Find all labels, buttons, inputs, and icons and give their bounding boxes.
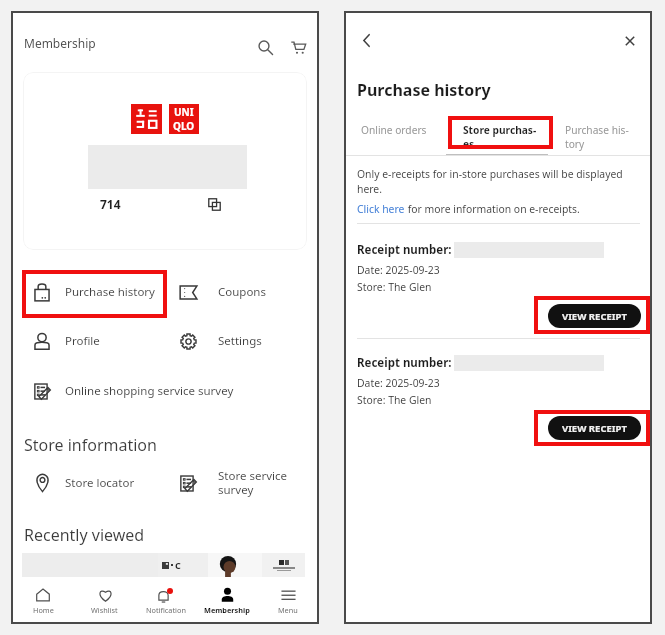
staticText: Store locator <box>65 475 135 491</box>
staticText: Home <box>33 605 54 615</box>
button[interactable]: Click here <box>357 202 405 216</box>
staticText: Coupons <box>218 284 266 300</box>
staticText: Membership <box>204 605 250 615</box>
button[interactable]: Close <box>617 28 643 54</box>
button[interactable]: Store service survey <box>176 466 316 500</box>
button[interactable]: Purchase his- tory <box>548 117 650 156</box>
staticText: VIEW RECEIPT <box>562 422 627 435</box>
button[interactable]: VIEW RECEIPT <box>548 416 641 440</box>
staticText: Store information <box>24 434 157 456</box>
button[interactable]: Recently viewed item 4 <box>262 553 305 577</box>
button[interactable] <box>23 72 307 250</box>
staticText: Profile <box>65 333 100 349</box>
button[interactable]: Store locator <box>30 466 170 500</box>
staticText: C <box>175 559 181 571</box>
button[interactable]: Membership <box>196 581 257 621</box>
button[interactable]: Copy membership number <box>204 194 224 214</box>
staticText: Online shopping service survey <box>65 383 234 399</box>
button[interactable]: Wishlist <box>74 581 135 621</box>
staticText: Recently viewed <box>24 524 145 546</box>
button[interactable]: Notification <box>135 581 196 621</box>
staticText: Store service survey <box>218 468 287 498</box>
staticText: Store purchas- es <box>463 123 537 151</box>
staticText: for more information on e-receipts. <box>405 202 580 216</box>
staticText: Store: The Glen <box>357 280 432 294</box>
staticText: Purchase history <box>65 284 155 300</box>
staticText: Store: The Glen <box>357 393 432 407</box>
button[interactable]: Online orders <box>344 117 446 156</box>
staticText: Receipt number: <box>357 242 452 258</box>
staticText: Online orders <box>361 123 427 137</box>
staticText: VIEW RECEIPT <box>562 310 627 323</box>
staticText: 714 <box>100 196 121 212</box>
staticText: Settings <box>218 333 262 349</box>
staticText: QLO <box>173 119 195 133</box>
staticText: Date: 2025-09-23 <box>357 376 440 390</box>
button[interactable]: Recently viewed item 2 <box>158 553 208 577</box>
button[interactable]: Store purchas- es <box>446 117 548 156</box>
staticText: Menu <box>278 605 298 615</box>
button[interactable]: Settings <box>176 324 316 358</box>
button[interactable]: Search <box>252 34 278 60</box>
button[interactable]: Home <box>12 581 74 621</box>
button[interactable]: VIEW RECEIPT <box>548 304 641 328</box>
staticText: Only e-receipts for in-store purchases w… <box>357 167 623 196</box>
button[interactable]: Online shopping service survey <box>30 374 290 408</box>
button[interactable]: Purchase history <box>30 275 170 309</box>
staticText: Notification <box>146 605 186 615</box>
button[interactable]: Coupons <box>176 275 316 309</box>
button[interactable]: Menu <box>257 581 318 621</box>
button[interactable]: Recently viewed item 3 <box>208 553 262 577</box>
staticText: Membership <box>24 35 96 51</box>
button[interactable]: Profile <box>30 324 170 358</box>
staticText: Receipt number: <box>357 355 452 371</box>
button[interactable]: Back <box>353 27 379 53</box>
staticText: Purchase his- tory <box>565 123 629 151</box>
button[interactable]: Cart <box>285 34 311 60</box>
staticText: UNI <box>174 105 194 119</box>
staticText: Date: 2025-09-23 <box>357 263 440 277</box>
staticText: Wishlist <box>91 605 118 615</box>
staticText: Purchase history <box>357 79 491 101</box>
